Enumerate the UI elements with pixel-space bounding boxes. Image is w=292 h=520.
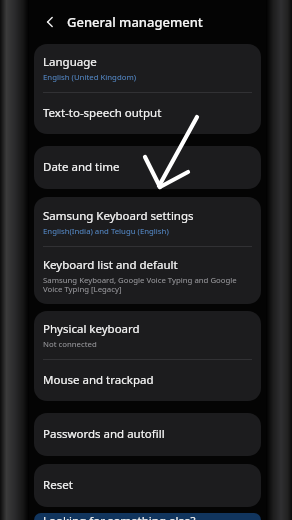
staticText: Reset [43, 477, 73, 493]
button[interactable]: Date and time [34, 146, 261, 189]
staticText: Passwords and autofill [43, 426, 165, 442]
staticText: Physical keyboard [43, 321, 140, 337]
staticText: Looking for something else? [43, 513, 196, 520]
staticText: Samsung Keyboard, Google Voice Typing an… [43, 275, 252, 295]
staticText: General management [67, 13, 203, 31]
staticText: Text-to-speech output [43, 105, 162, 121]
staticText: English(India) and Telugu (English) [43, 226, 169, 237]
button[interactable]: Mouse and trackpad [34, 360, 261, 401]
button[interactable]: Text-to-speech output [34, 93, 261, 134]
button[interactable]: Reset [34, 464, 261, 507]
staticText: Mouse and trackpad [43, 372, 154, 388]
button[interactable]: Passwords and autofill [34, 413, 261, 456]
button[interactable]: Back [39, 11, 61, 33]
staticText: Language [43, 54, 97, 70]
staticText: English (United Kingdom) [43, 72, 137, 83]
staticText: Samsung Keyboard settings [43, 208, 194, 224]
button[interactable]: Keyboard list and default [34, 247, 261, 304]
staticText: Keyboard list and default [43, 257, 178, 273]
button[interactable]: Looking for something else? [34, 513, 261, 520]
staticText: Date and time [43, 159, 120, 175]
button[interactable]: Language [34, 44, 261, 92]
button[interactable]: Physical keyboard [34, 311, 261, 359]
staticText: Not connected [43, 339, 97, 350]
button[interactable]: Samsung Keyboard settings [34, 197, 261, 246]
